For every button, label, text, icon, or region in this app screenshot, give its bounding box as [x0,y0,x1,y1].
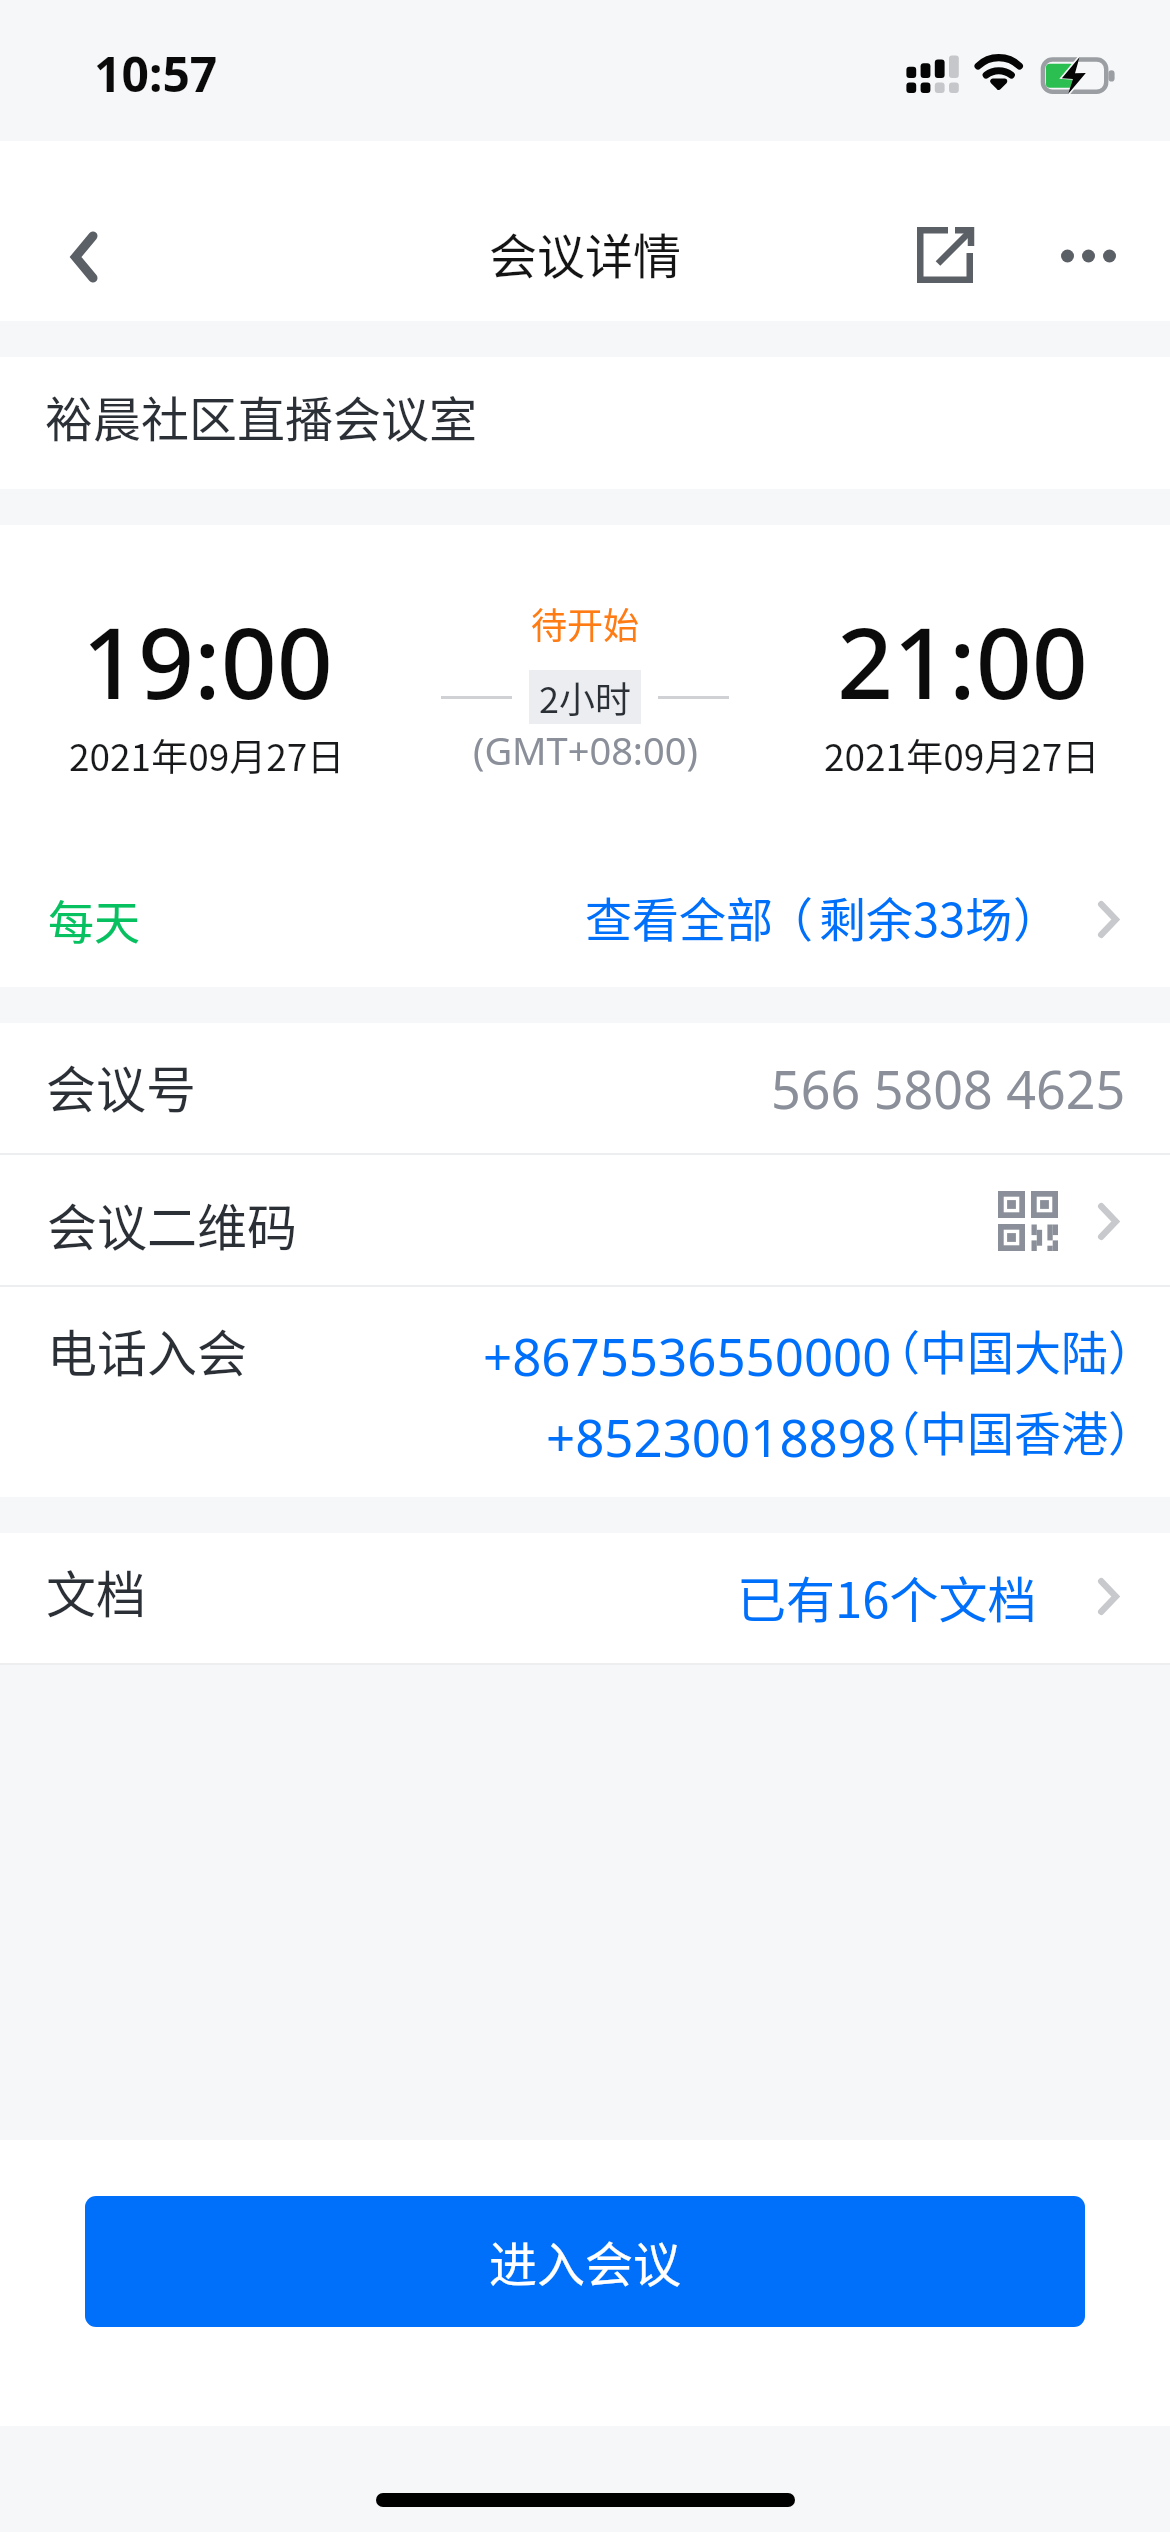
staticText: 待开始 [531,597,640,649]
staticText: 进入会议 [489,2226,682,2296]
staticText: 会议详情 [489,218,682,288]
staticText: 文档 [46,1555,146,1627]
staticText: 21:00 [837,594,1088,727]
button[interactable]: 每天 [0,825,1170,987]
staticText: 10:57 [94,41,218,106]
staticText: 19:00 [82,594,333,727]
button[interactable]: 进入会议 [85,2196,1085,2327]
staticText: 每天 [48,886,140,953]
staticText: 剩余33场 [819,882,1013,950]
staticText: 会议二维码 [47,1188,297,1260]
button[interactable]: 会议号 [0,1023,1170,1153]
staticText: 2小时 [539,671,631,723]
staticText: （中国大陆） [873,1315,1155,1383]
button[interactable]: 会议二维码 [0,1155,1170,1285]
button[interactable]: Back [29,147,139,307]
staticText: 已有16个文档 [737,1561,1037,1632]
button[interactable]: More options [1031,201,1141,311]
staticText: 裕晨社区直播会议室 [45,381,478,451]
staticText: 566 5808 4625 [771,1053,1126,1124]
staticText: +85230018898 [546,1402,897,1471]
staticText: +8675536550000 [483,1321,892,1390]
staticText: 2021年09月27日 [824,728,1100,782]
button[interactable]: 文档 [0,1533,1170,1663]
staticText: （ [766,882,813,950]
staticText: 2021年09月27日 [69,728,345,782]
staticText: 查看全部 [585,882,773,950]
button[interactable]: 电话入会 [0,1287,1170,1497]
staticText: （中国香港） [873,1396,1155,1464]
staticText: 会议号 [46,1050,196,1122]
staticText: ） [1013,882,1060,950]
staticText: (GMT+08:00) [473,724,698,776]
staticText: 电话入会 [47,1314,247,1386]
button[interactable]: Share [890,200,1000,310]
